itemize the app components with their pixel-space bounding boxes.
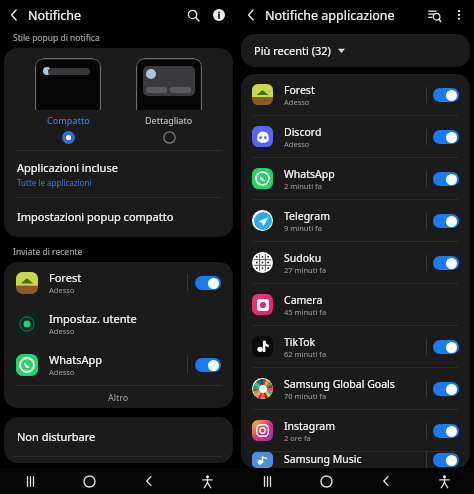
staticText: Non disturbare	[17, 429, 96, 444]
button[interactable]: Back	[119, 468, 178, 494]
staticText: Notifiche	[28, 7, 82, 24]
staticText: Discord	[284, 125, 322, 139]
staticText: Stile popup di notifica	[13, 32, 100, 44]
button[interactable]: Toggle	[195, 358, 221, 372]
staticText: Dettagliato	[145, 114, 193, 126]
staticText: 70 minuti fa	[284, 391, 327, 401]
staticText: TikTok	[284, 335, 316, 349]
staticText: 2 ore fa	[284, 433, 311, 443]
button[interactable]: Applicazioni incluse	[4, 151, 233, 197]
staticText: Altro	[108, 391, 129, 403]
button[interactable]: Toggle	[433, 340, 459, 354]
button[interactable]: Toggle	[433, 453, 459, 467]
staticText: Instagram	[284, 419, 336, 433]
staticText: Impostazioni popup compatto	[17, 209, 174, 224]
staticText: Compatto	[47, 114, 90, 126]
button[interactable]: Toggle	[433, 424, 459, 438]
button[interactable]: Sudoku	[241, 242, 470, 283]
staticText: Sudoku	[284, 251, 322, 265]
button[interactable]: Toggle	[433, 256, 459, 270]
button[interactable]: TikTok	[241, 326, 470, 367]
button[interactable]: Back	[0, 1, 28, 29]
button[interactable]: Toggle	[433, 172, 459, 186]
button[interactable]: Recents	[237, 468, 297, 494]
button[interactable]: Forest	[241, 74, 470, 115]
button[interactable]: Toggle	[433, 130, 459, 144]
button[interactable]: Back	[356, 468, 415, 494]
staticText: Adesso	[284, 139, 310, 149]
staticText: WhatsApp	[284, 167, 335, 181]
button[interactable]: Accessibility	[178, 468, 237, 494]
staticText: Forest	[284, 83, 315, 97]
button[interactable]: More options	[447, 3, 471, 27]
button[interactable]: Samsung Music	[241, 452, 470, 468]
button[interactable]: Search	[180, 2, 206, 28]
staticText: Samsung Global Goals	[284, 377, 395, 391]
staticText: WhatsApp	[49, 352, 102, 367]
button[interactable]: Recents	[0, 468, 60, 494]
staticText: Samsung Music	[284, 452, 362, 466]
button[interactable]: Dettagliato	[132, 58, 206, 144]
button[interactable]: Toggle	[433, 88, 459, 102]
staticText: Adesso	[49, 285, 75, 295]
button[interactable]: Altro	[4, 386, 233, 408]
button[interactable]: Forest	[4, 262, 233, 303]
button[interactable]: Samsung Global Goals	[241, 368, 470, 409]
staticText: Inviate di recente	[13, 246, 83, 258]
button[interactable]: Info	[206, 2, 232, 28]
staticText: Applicazioni incluse	[17, 160, 118, 175]
staticText: Telegram	[284, 209, 330, 223]
staticText: 9 minuti fa	[284, 223, 322, 233]
staticText: 45 minuti fa	[284, 307, 327, 317]
button[interactable]: Home	[60, 468, 119, 494]
button[interactable]: WhatsApp	[4, 344, 233, 385]
button[interactable]: Discord	[241, 116, 470, 157]
staticText: Adesso	[49, 367, 75, 377]
button[interactable]: Home	[297, 468, 356, 494]
staticText: Più recenti (32)	[254, 43, 331, 58]
button[interactable]: Back	[237, 1, 265, 29]
staticText: Tutte le applicazioni	[17, 177, 92, 188]
staticText: Notifiche applicazione	[265, 7, 395, 24]
staticText: 62 minuti fa	[284, 349, 327, 359]
staticText: Camera	[284, 293, 323, 307]
button[interactable]: Telegram	[241, 200, 470, 241]
button[interactable]: Search settings	[421, 2, 447, 28]
button[interactable]: Compatto	[31, 58, 105, 144]
staticText: Impostaz. utente	[49, 311, 137, 326]
button[interactable]: Toggle	[433, 214, 459, 228]
button[interactable]: Impostaz. utente	[4, 303, 233, 344]
staticText: Adesso	[49, 326, 75, 336]
button[interactable]: Accessibility	[415, 468, 474, 494]
button[interactable]: Instagram	[241, 410, 470, 451]
staticText: Adesso	[284, 97, 310, 107]
button[interactable]: Toggle	[195, 276, 221, 290]
button[interactable]: Più recenti (32)	[241, 34, 470, 67]
staticText: Forest	[49, 270, 82, 285]
button[interactable]: Non disturbare	[4, 417, 233, 456]
button[interactable]: WhatsApp	[241, 158, 470, 199]
button[interactable]: Impostazioni popup compatto	[4, 198, 233, 237]
staticText: 27 minuti fa	[284, 265, 327, 275]
button[interactable]: Camera	[241, 284, 470, 325]
staticText: 2 minuti fa	[284, 181, 322, 191]
button[interactable]: Toggle	[433, 382, 459, 396]
